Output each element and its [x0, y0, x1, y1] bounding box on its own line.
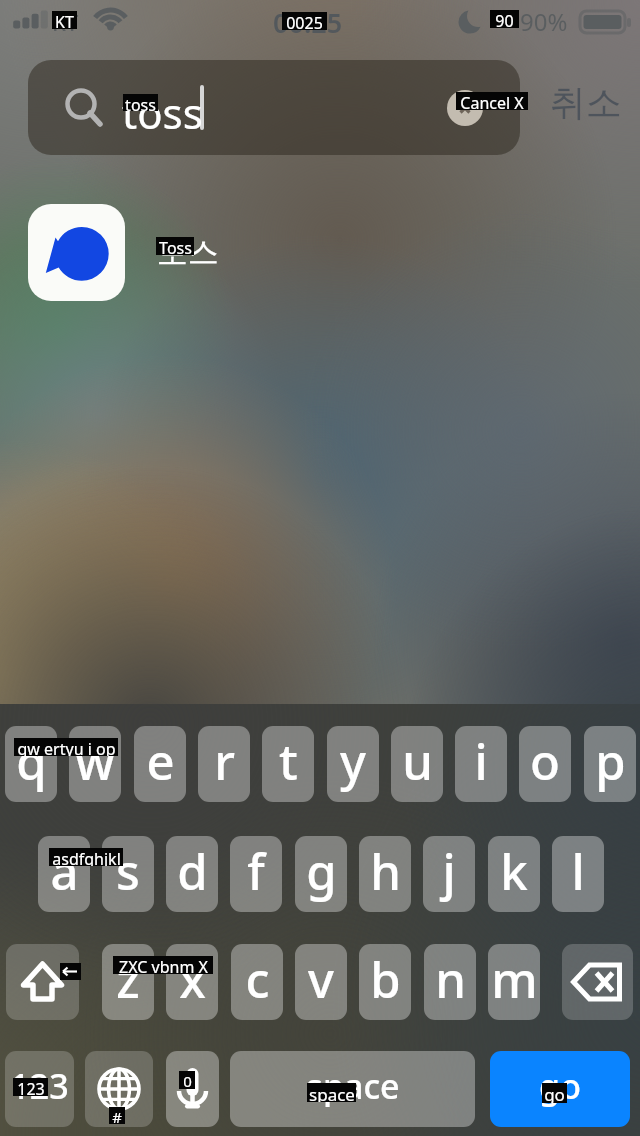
- staticText: 123: [10, 1063, 69, 1109]
- staticText: o: [530, 728, 560, 795]
- staticText: z: [116, 946, 140, 1013]
- button[interactable]: g: [295, 836, 347, 912]
- staticText: 90%: [520, 5, 568, 38]
- staticText: go: [539, 1063, 581, 1109]
- staticText: t: [279, 728, 298, 795]
- staticText: y: [340, 728, 366, 795]
- staticText: w: [75, 728, 115, 795]
- staticText: g: [306, 838, 337, 905]
- button[interactable]: s: [102, 836, 154, 912]
- button[interactable]: Backspace: [562, 944, 633, 1020]
- staticText: v: [308, 946, 334, 1013]
- staticText: 00:25: [273, 4, 343, 41]
- button[interactable]: p: [584, 726, 636, 802]
- staticText: toss: [125, 94, 156, 111]
- staticText: ZXC vbnm X: [119, 956, 208, 974]
- button[interactable]: 토스: [0, 178, 640, 326]
- staticText: #: [112, 1107, 122, 1124]
- staticText: u: [402, 728, 433, 795]
- staticText: c: [245, 946, 270, 1013]
- button[interactable]: e: [134, 726, 186, 802]
- staticText: a: [50, 838, 79, 905]
- staticText: q: [16, 728, 47, 795]
- staticText: 123: [17, 1078, 45, 1096]
- staticText: 90: [495, 10, 514, 28]
- staticText: 0025: [286, 12, 323, 30]
- button[interactable]: 취소: [536, 55, 628, 150]
- staticText: x: [179, 946, 206, 1013]
- staticText: toss: [122, 84, 203, 141]
- staticText: e: [146, 728, 175, 795]
- staticText: KT: [52, 7, 79, 37]
- button[interactable]: r: [198, 726, 250, 802]
- staticText: space: [309, 1083, 355, 1102]
- staticText: f: [247, 838, 265, 905]
- button[interactable]: b: [359, 944, 411, 1020]
- button[interactable]: Shift: [6, 944, 79, 1020]
- staticText: 취소: [550, 80, 622, 125]
- button[interactable]: Switch keyboard: [85, 1051, 153, 1127]
- staticText: b: [370, 946, 401, 1013]
- button[interactable]: l: [552, 836, 604, 912]
- staticText: 토스: [157, 233, 219, 272]
- button[interactable]: j: [423, 836, 475, 912]
- button[interactable]: v: [295, 944, 347, 1020]
- button[interactable]: n: [424, 944, 476, 1020]
- button[interactable]: a: [38, 836, 90, 912]
- button[interactable]: 123: [5, 1051, 74, 1127]
- staticText: d: [177, 838, 208, 905]
- staticText: qw ertyu i op: [17, 738, 116, 756]
- staticText: 0: [183, 1071, 192, 1089]
- staticText: s: [116, 838, 140, 905]
- button[interactable]: u: [391, 726, 443, 802]
- button[interactable]: i: [455, 726, 507, 802]
- staticText: h: [370, 838, 401, 905]
- button[interactable]: t: [262, 726, 314, 802]
- button[interactable]: k: [488, 836, 540, 912]
- button[interactable]: o: [519, 726, 571, 802]
- button[interactable]: space: [230, 1051, 475, 1127]
- button[interactable]: d: [166, 836, 218, 912]
- staticText: asdfghjkl: [52, 848, 121, 866]
- button[interactable]: toss: [28, 60, 520, 155]
- staticText: space: [306, 1063, 400, 1109]
- button[interactable]: y: [327, 726, 379, 802]
- staticText: j: [442, 838, 456, 905]
- staticText: r: [214, 728, 235, 795]
- button[interactable]: Clear search: [447, 90, 483, 126]
- button[interactable]: h: [359, 836, 411, 912]
- button[interactable]: x: [166, 944, 218, 1020]
- staticText: n: [435, 946, 466, 1013]
- staticText: k: [500, 838, 528, 905]
- staticText: Cancel X: [460, 92, 524, 110]
- button[interactable]: w: [69, 726, 121, 802]
- button[interactable]: m: [488, 944, 540, 1020]
- button[interactable]: go: [490, 1051, 630, 1127]
- staticText: KT: [55, 11, 74, 29]
- staticText: p: [595, 728, 626, 795]
- button[interactable]: f: [230, 836, 282, 912]
- button[interactable]: c: [231, 944, 283, 1020]
- button[interactable]: Dictation: [166, 1051, 219, 1127]
- staticText: go: [544, 1083, 565, 1103]
- staticText: m: [491, 946, 538, 1013]
- staticText: Toss: [159, 237, 192, 255]
- staticText: i: [474, 728, 488, 795]
- button[interactable]: q: [5, 726, 57, 802]
- staticText: l: [571, 838, 585, 905]
- button[interactable]: z: [102, 944, 154, 1020]
